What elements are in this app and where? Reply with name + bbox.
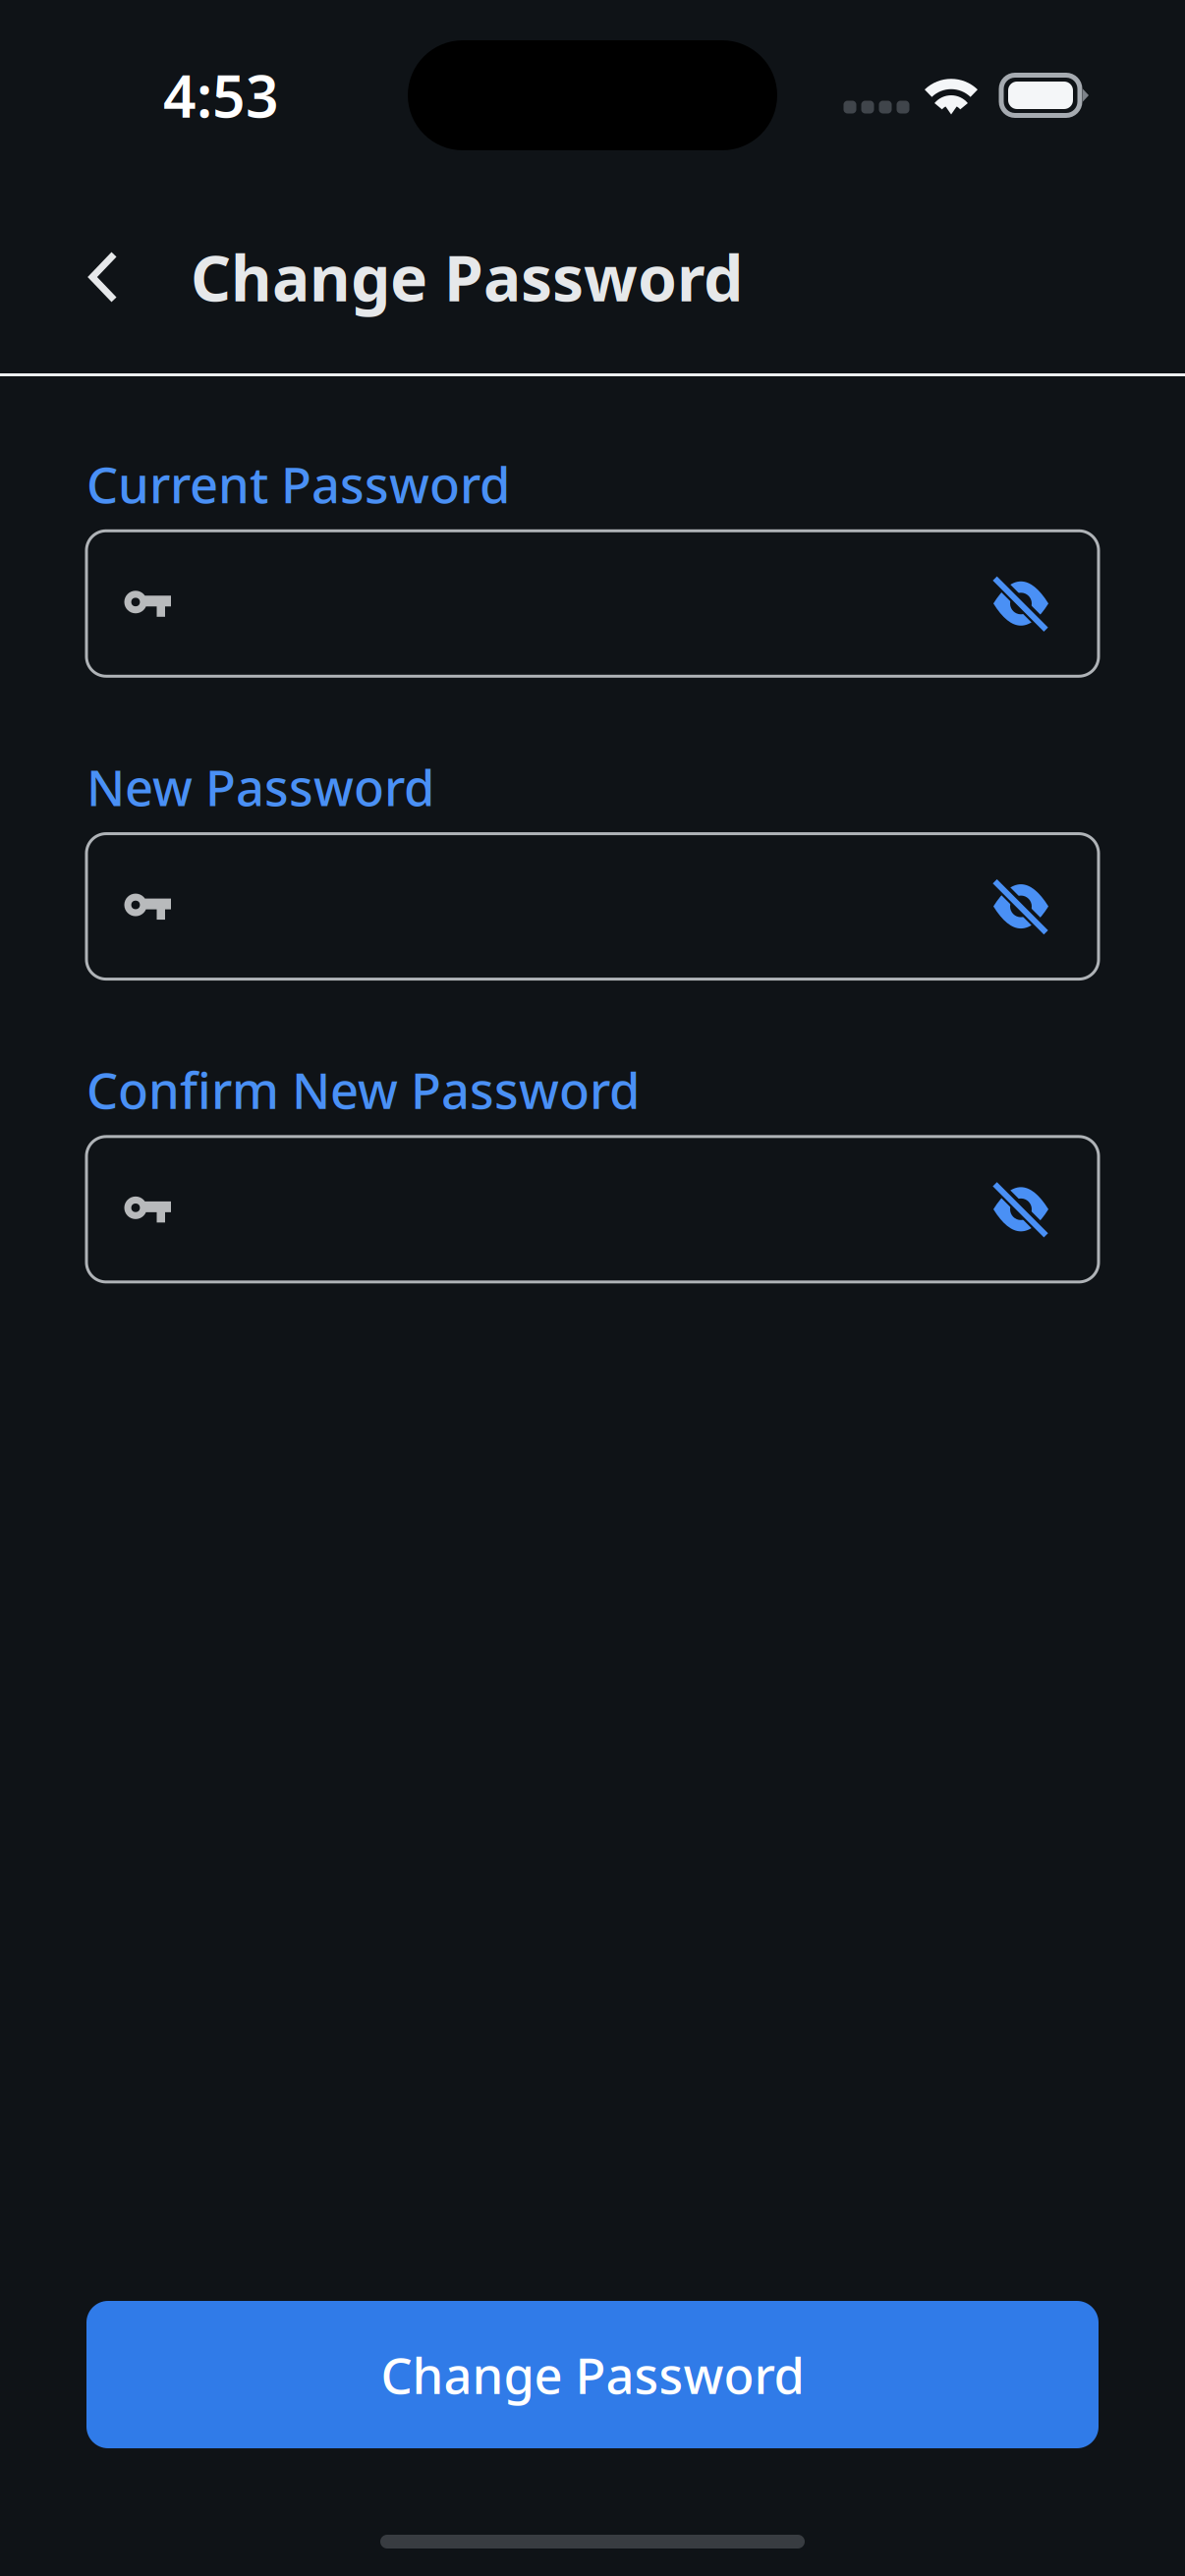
staticText: Current Password [86, 451, 510, 517]
button[interactable]: Back [57, 215, 151, 339]
button[interactable]: Show password [984, 869, 1058, 944]
staticText: New Password [86, 754, 434, 820]
staticText: Change Password [191, 235, 743, 319]
button[interactable]: Change Password [86, 2301, 1099, 2448]
button[interactable]: Show password [984, 566, 1058, 641]
button[interactable]: Show password [984, 1172, 1058, 1247]
staticText: Confirm New Password [86, 1057, 640, 1123]
staticText: 4:53 [163, 57, 279, 134]
staticText: Change Password [381, 2342, 804, 2408]
